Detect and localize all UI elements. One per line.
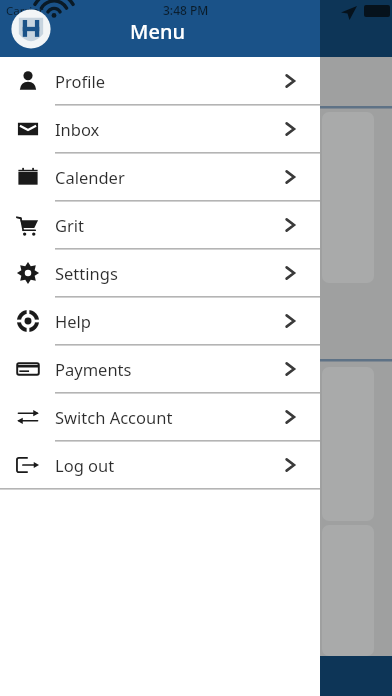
button[interactable]: Inbox [0, 105, 320, 153]
button[interactable]: Log out [0, 441, 320, 489]
staticText: Settings [55, 262, 118, 284]
button[interactable]: Settings [0, 249, 320, 297]
staticText: Menu [130, 18, 185, 45]
button[interactable]: Help [0, 297, 320, 345]
button[interactable]: Calender [0, 153, 320, 201]
staticText: Switch Account [55, 406, 173, 428]
staticText: Inbox [55, 118, 100, 140]
staticText: 3:48 PM [163, 2, 209, 18]
button[interactable]: Grit [0, 201, 320, 249]
staticText: Profile [55, 70, 105, 92]
staticText: Carrier [6, 3, 44, 19]
button[interactable]: Switch Account [0, 393, 320, 441]
staticText: Help [55, 310, 91, 332]
staticText: Calender [55, 166, 125, 188]
staticText: Log out [55, 454, 115, 476]
other: App logo [11, 9, 51, 49]
staticText: Payments [55, 358, 132, 380]
button[interactable]: Profile [0, 57, 320, 105]
button[interactable]: Payments [0, 345, 320, 393]
staticText: Grit [55, 214, 85, 236]
